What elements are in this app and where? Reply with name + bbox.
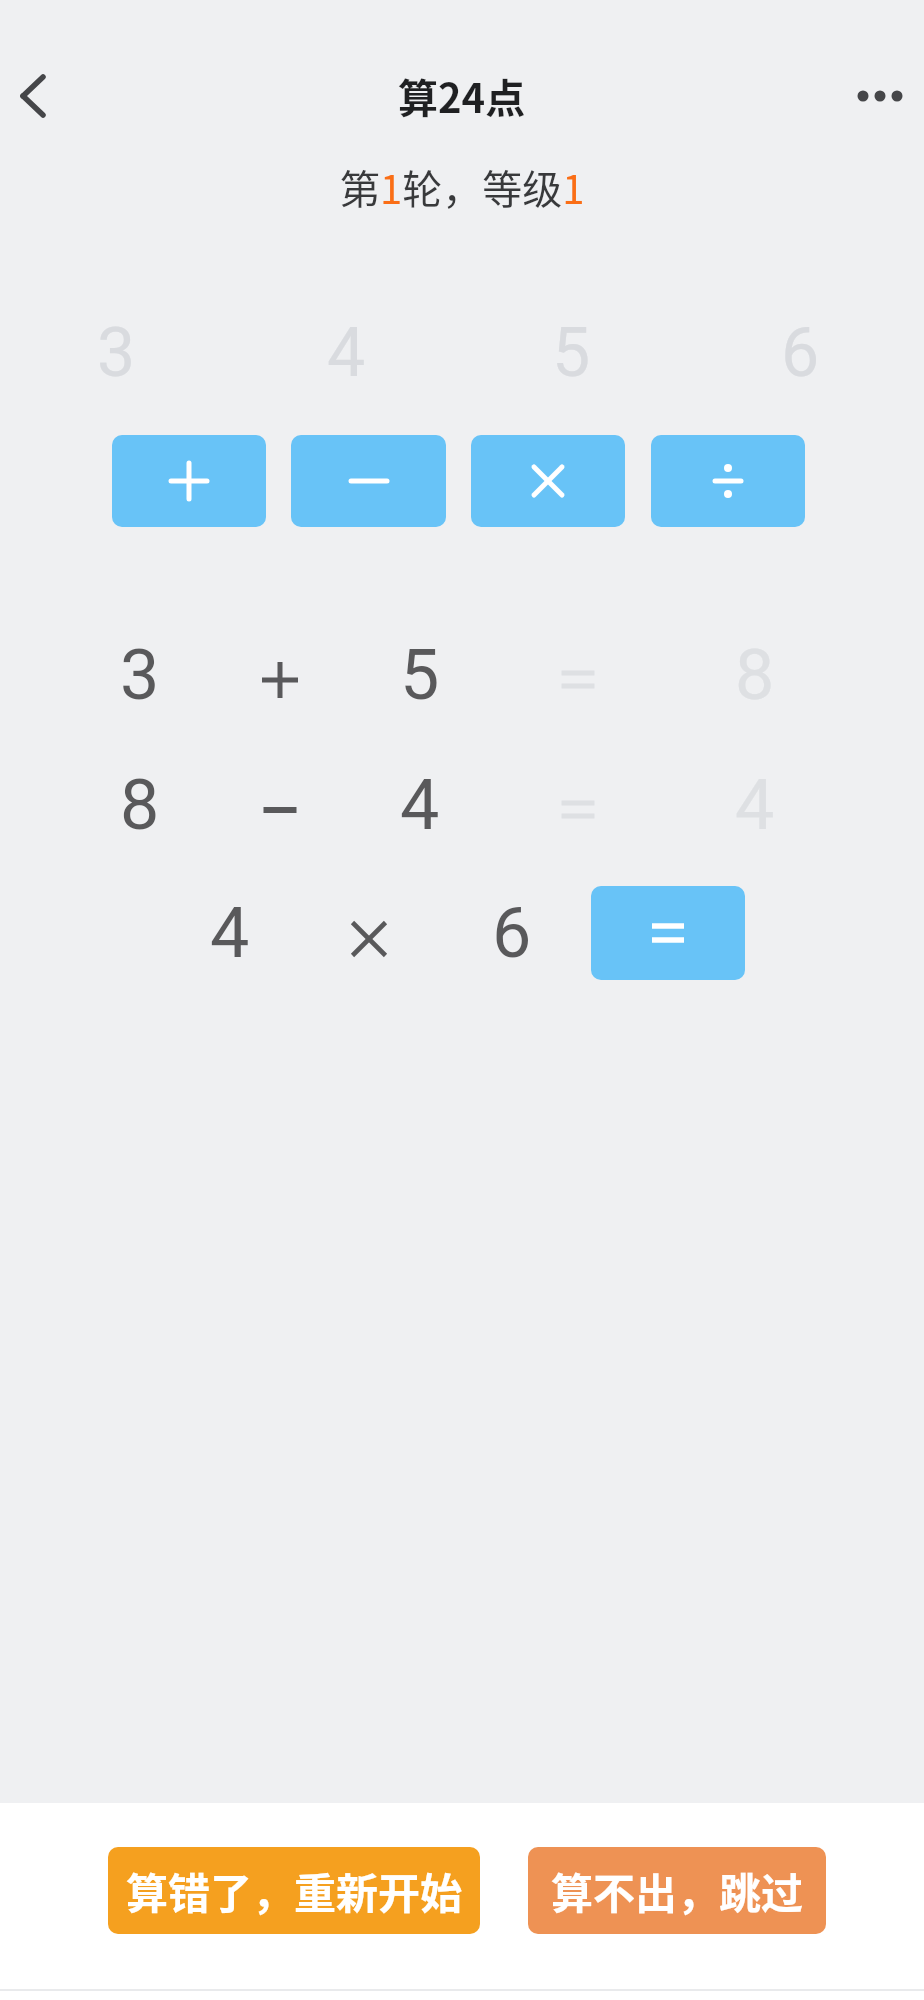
staticText: 3 bbox=[120, 634, 160, 716]
staticText: 算错了，重新开始 bbox=[126, 1860, 463, 1921]
button[interactable]: 算不出，跳过 bbox=[528, 1847, 826, 1934]
staticText: 算不出，跳过 bbox=[551, 1860, 804, 1921]
button[interactable] bbox=[471, 435, 625, 527]
staticText: 4 bbox=[210, 892, 250, 974]
staticText: 5 bbox=[552, 313, 591, 393]
button[interactable] bbox=[291, 435, 446, 527]
staticText: 4 bbox=[327, 313, 366, 393]
staticText: 4 bbox=[735, 764, 775, 846]
staticText: 8 bbox=[120, 764, 160, 846]
staticText: 5 bbox=[400, 634, 440, 716]
staticText: 4 bbox=[400, 764, 440, 846]
button[interactable] bbox=[845, 78, 915, 114]
button[interactable] bbox=[8, 70, 60, 122]
button[interactable] bbox=[591, 886, 745, 980]
button[interactable]: 算错了，重新开始 bbox=[108, 1847, 480, 1934]
button[interactable] bbox=[651, 435, 805, 527]
staticText: 8 bbox=[735, 634, 775, 716]
staticText: 6 bbox=[781, 313, 820, 393]
staticText: 算24点 bbox=[398, 67, 526, 125]
button[interactable] bbox=[112, 435, 266, 527]
staticText: 第1轮，等级1 bbox=[340, 158, 585, 216]
staticText: 6 bbox=[492, 892, 532, 974]
staticText: 3 bbox=[97, 313, 136, 393]
